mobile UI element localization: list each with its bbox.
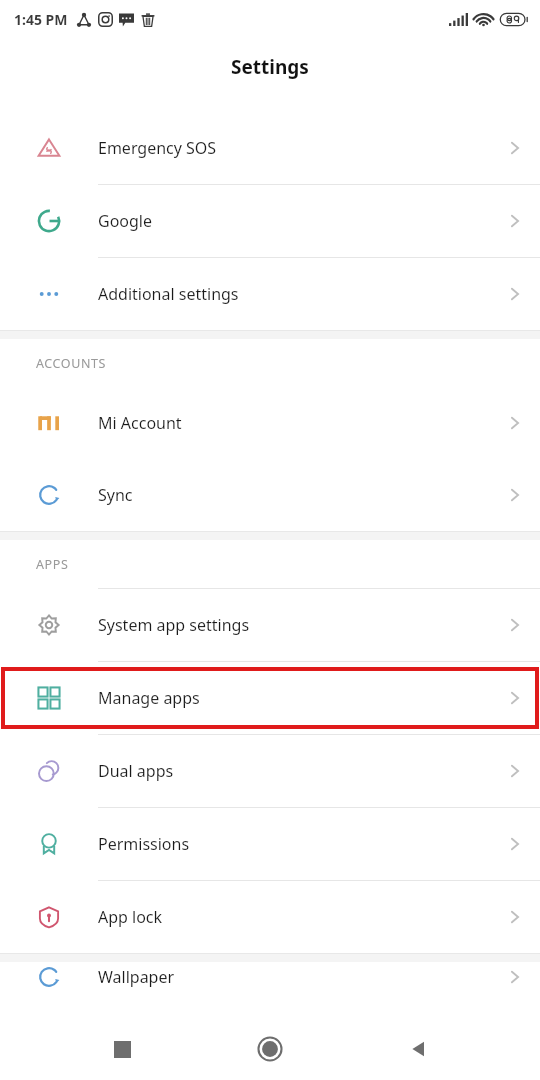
button[interactable]: System app settings bbox=[0, 589, 540, 661]
staticText: Permissions bbox=[98, 833, 504, 855]
staticText: Emergency SOS bbox=[98, 137, 504, 159]
staticText: System app settings bbox=[98, 614, 504, 636]
button[interactable]: Wallpaper bbox=[0, 962, 540, 992]
staticText: 1:45 PM bbox=[14, 10, 68, 29]
button[interactable]: Manage apps bbox=[0, 662, 540, 734]
button[interactable]: Google bbox=[0, 185, 540, 257]
staticText: Manage apps bbox=[98, 687, 504, 709]
staticText: Wallpaper bbox=[98, 966, 504, 988]
staticText: App lock bbox=[98, 906, 504, 928]
button[interactable]: Permissions bbox=[0, 808, 540, 880]
button[interactable]: Mi Account bbox=[0, 387, 540, 459]
button[interactable]: Recents bbox=[96, 1023, 148, 1075]
button[interactable]: Additional settings bbox=[0, 258, 540, 330]
button[interactable]: Dual apps bbox=[0, 735, 540, 807]
staticText: Dual apps bbox=[98, 760, 504, 782]
button[interactable]: Home bbox=[244, 1023, 296, 1075]
staticText: Additional settings bbox=[98, 283, 504, 305]
staticText: ACCOUNTS bbox=[36, 355, 107, 372]
staticText: Settings bbox=[231, 54, 309, 80]
button[interactable]: Back bbox=[392, 1023, 444, 1075]
button[interactable]: App lock bbox=[0, 881, 540, 953]
button[interactable]: Sync bbox=[0, 459, 540, 531]
staticText: Sync bbox=[98, 484, 504, 506]
staticText: APPS bbox=[36, 556, 69, 573]
button[interactable]: Emergency SOS bbox=[0, 112, 540, 184]
staticText: Google bbox=[98, 210, 504, 232]
staticText: Mi Account bbox=[98, 412, 504, 434]
